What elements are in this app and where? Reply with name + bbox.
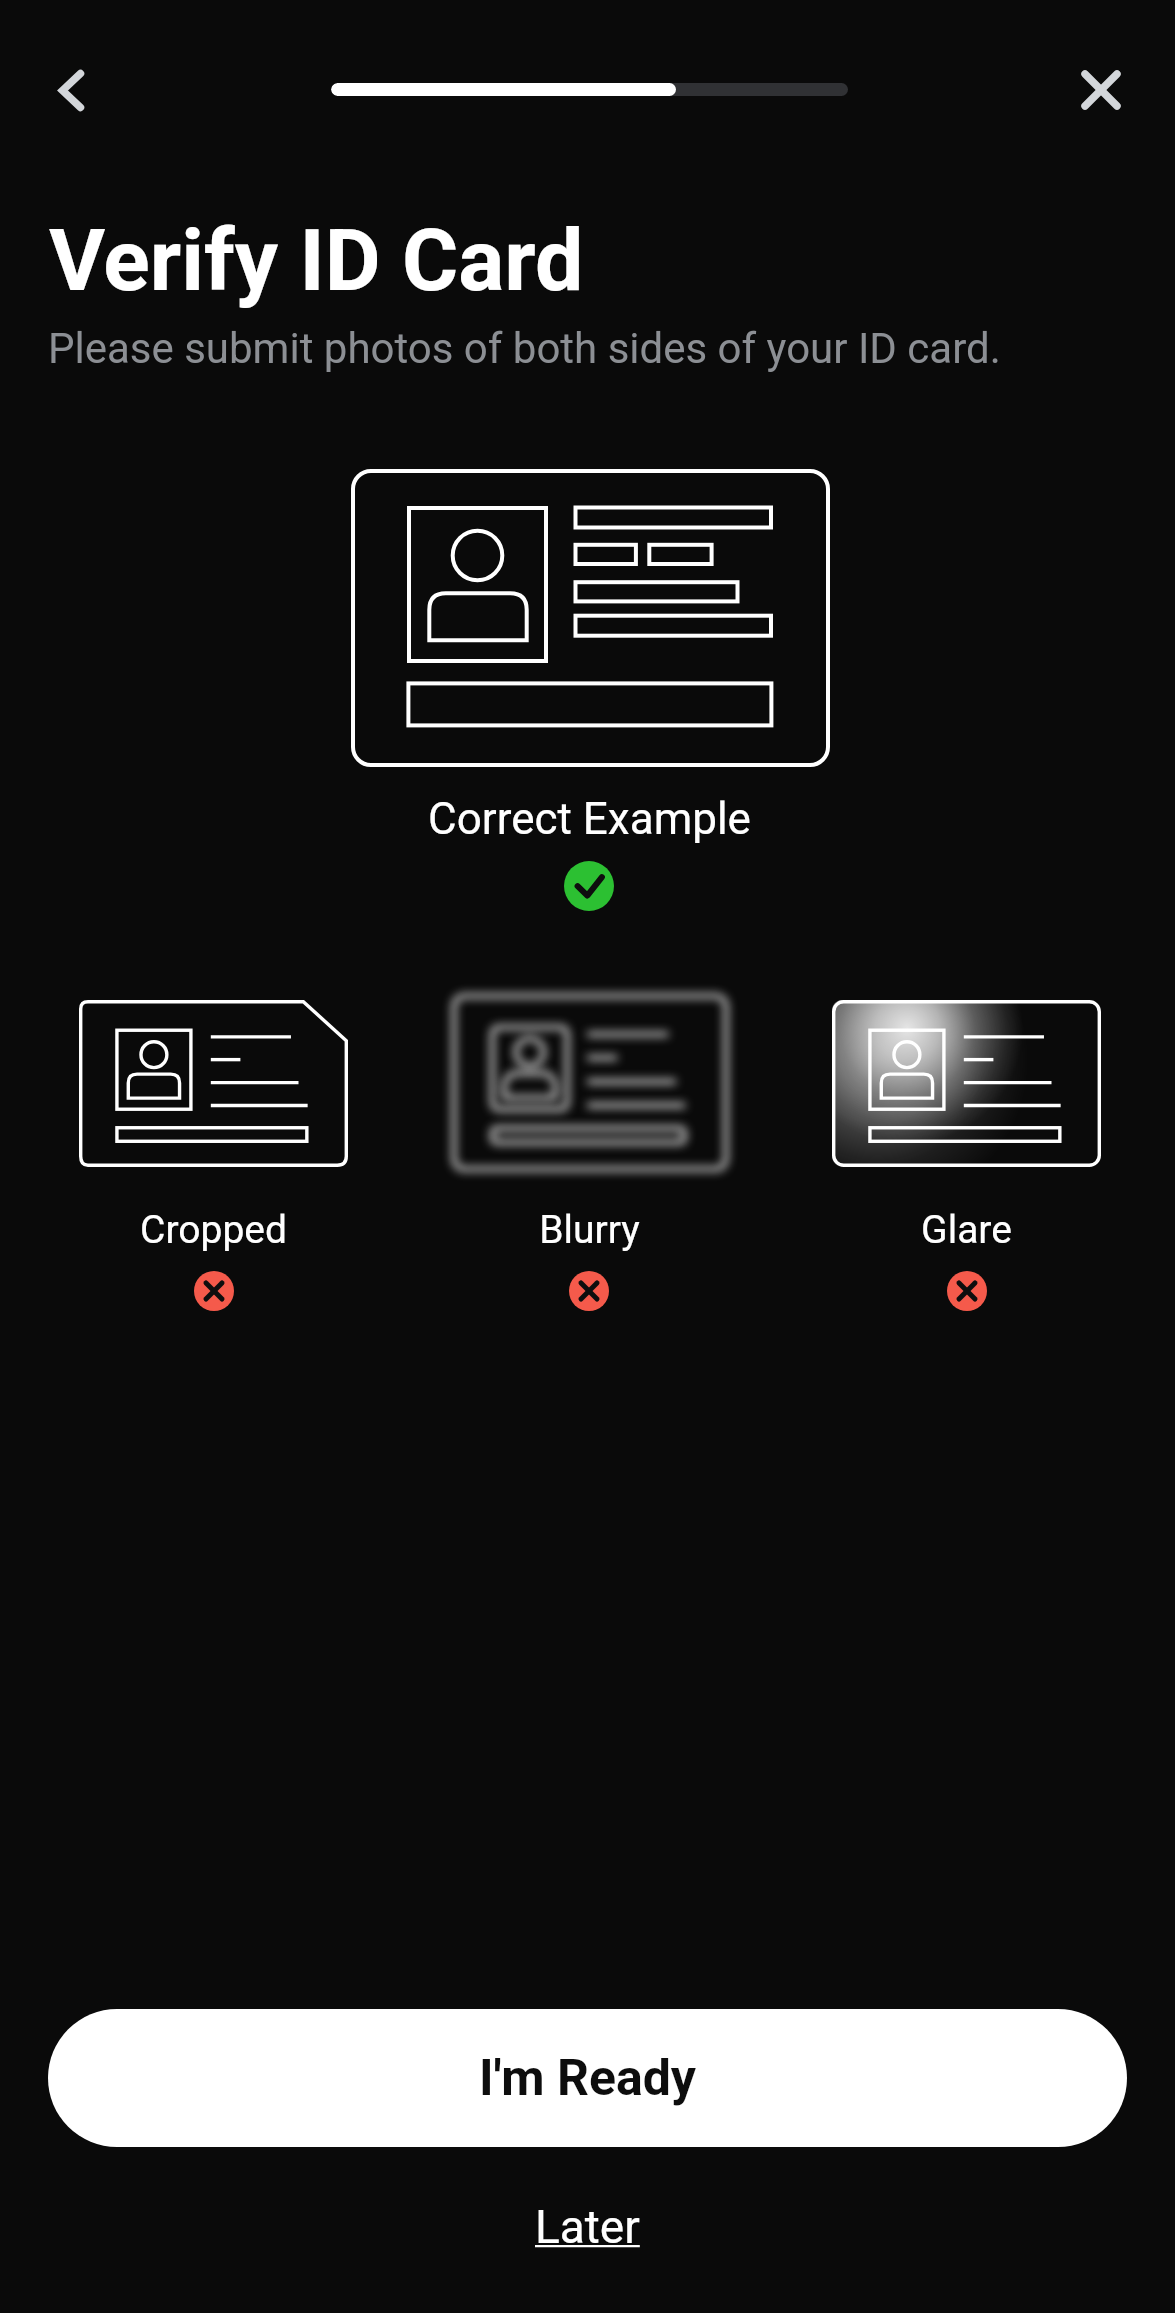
- staticText: Later: [535, 2200, 640, 2254]
- staticText: Please submit photos of both sides of yo…: [48, 324, 1001, 373]
- button[interactable]: I'm Ready: [48, 2009, 1127, 2147]
- other: Correct: [564, 861, 614, 911]
- staticText: Glare: [921, 1207, 1012, 1253]
- staticText: Correct Example: [428, 793, 751, 845]
- staticText: Cropped: [140, 1207, 287, 1253]
- button[interactable]: Close: [1056, 45, 1146, 135]
- staticText: Verify ID Card: [49, 210, 584, 311]
- other: Step 2 of 3: [331, 83, 848, 96]
- staticText: Blurry: [539, 1207, 640, 1253]
- button[interactable]: Later: [505, 2190, 670, 2264]
- staticText: I'm Ready: [479, 2049, 697, 2108]
- other: Rejected: Blurry: [569, 1271, 609, 1311]
- other: Rejected: Cropped: [194, 1271, 234, 1311]
- button[interactable]: Back: [26, 45, 116, 135]
- other: Rejected: Glare: [947, 1271, 987, 1311]
